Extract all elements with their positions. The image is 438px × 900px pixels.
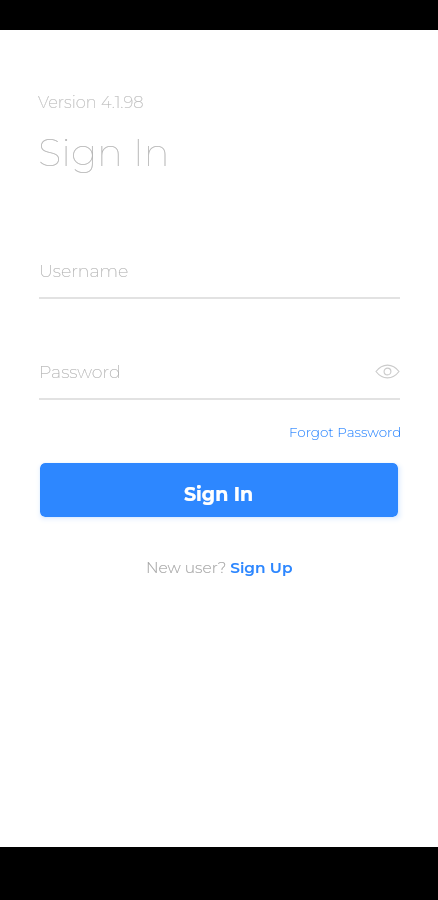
button[interactable]: Sign In (40, 463, 398, 517)
staticText: Password (39, 361, 121, 382)
staticText: Forgot Password (289, 424, 402, 440)
button[interactable]: Show password (373, 357, 401, 385)
staticText: Sign In (38, 129, 170, 176)
staticText: Version 4.1.98 (38, 92, 144, 112)
staticText: Username (39, 260, 129, 281)
button[interactable]: New user? Sign Up (146, 558, 293, 577)
staticText: New user? Sign Up (146, 558, 293, 577)
button[interactable]: Forgot Password (289, 424, 402, 440)
staticText: Sign In (184, 483, 254, 506)
